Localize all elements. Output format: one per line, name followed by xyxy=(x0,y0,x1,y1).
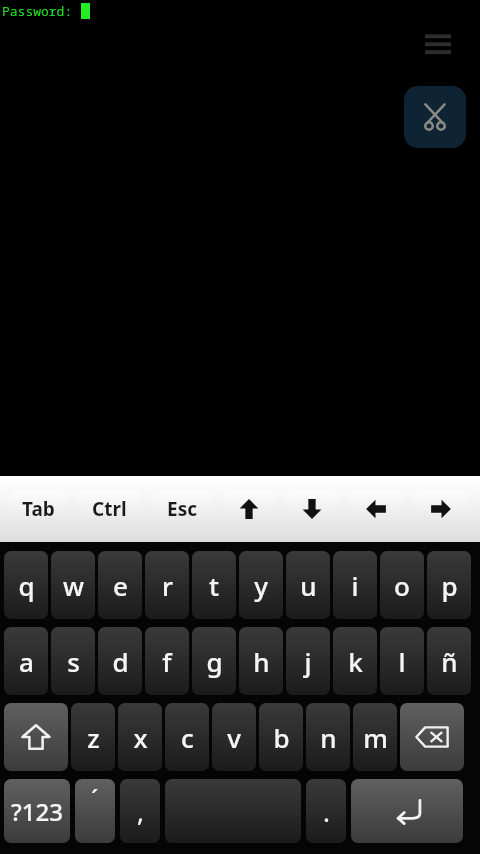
button[interactable]: Space xyxy=(165,779,301,843)
staticText: l xyxy=(398,644,406,679)
button[interactable]: n xyxy=(306,703,350,771)
staticText: g xyxy=(206,644,223,679)
button[interactable]: Cut xyxy=(404,86,466,148)
button[interactable]: a xyxy=(4,627,48,695)
staticText: q xyxy=(18,568,35,603)
button[interactable]: Arrow up xyxy=(222,490,276,528)
staticText: d xyxy=(112,644,129,679)
button[interactable]: Backspace xyxy=(400,703,464,771)
button[interactable]: f xyxy=(145,627,189,695)
staticText: Ctrl xyxy=(92,496,127,522)
button[interactable]: d xyxy=(98,627,142,695)
staticText: t xyxy=(209,568,219,603)
button[interactable]: , xyxy=(120,779,160,843)
staticText: ´ xyxy=(91,781,99,816)
button[interactable]: i xyxy=(333,551,377,619)
button[interactable]: v xyxy=(212,703,256,771)
button[interactable]: u xyxy=(286,551,330,619)
button[interactable]: o xyxy=(380,551,424,619)
staticText: Esc xyxy=(167,496,197,522)
button[interactable]: b xyxy=(259,703,303,771)
staticText: v xyxy=(227,720,241,755)
staticText: c xyxy=(181,720,194,755)
staticText: ñ xyxy=(441,644,458,679)
staticText: i xyxy=(351,568,359,603)
staticText: w xyxy=(63,568,84,603)
button[interactable]: k xyxy=(333,627,377,695)
button[interactable]: z xyxy=(71,703,115,771)
button[interactable]: t xyxy=(192,551,236,619)
button[interactable]: ñ xyxy=(427,627,471,695)
staticText: x xyxy=(133,720,148,755)
button[interactable]: Accent xyxy=(75,779,115,843)
staticText: a xyxy=(19,644,34,679)
staticText: ?123 xyxy=(11,795,63,828)
button[interactable]: x xyxy=(118,703,162,771)
button[interactable]: j xyxy=(286,627,330,695)
staticText: f xyxy=(162,644,172,679)
button[interactable]: Shift xyxy=(4,703,68,771)
staticText: h xyxy=(253,644,270,679)
staticText: . xyxy=(323,794,330,829)
staticText: u xyxy=(300,568,317,603)
button[interactable]: ?123 xyxy=(4,779,70,843)
button[interactable]: q xyxy=(4,551,48,619)
button[interactable]: c xyxy=(165,703,209,771)
button[interactable]: r xyxy=(145,551,189,619)
button[interactable]: Esc xyxy=(151,490,213,528)
staticText: k xyxy=(348,644,363,679)
staticText: n xyxy=(320,720,337,755)
button[interactable]: Tab xyxy=(9,490,67,528)
button[interactable]: Arrow down xyxy=(285,490,339,528)
button[interactable]: Enter xyxy=(351,779,463,843)
button[interactable]: l xyxy=(380,627,424,695)
button[interactable]: w xyxy=(51,551,95,619)
staticText: z xyxy=(87,720,100,755)
button[interactable]: e xyxy=(98,551,142,619)
button[interactable]: Menu xyxy=(422,28,454,60)
button[interactable]: p xyxy=(427,551,471,619)
button[interactable]: h xyxy=(239,627,283,695)
staticText: o xyxy=(394,568,410,603)
staticText: Password: xyxy=(2,2,81,20)
button[interactable]: Arrow left xyxy=(348,490,404,528)
button[interactable]: Arrow right xyxy=(413,490,469,528)
button[interactable]: s xyxy=(51,627,95,695)
staticText: s xyxy=(67,644,80,679)
button[interactable]: y xyxy=(239,551,283,619)
button[interactable]: Ctrl xyxy=(76,490,142,528)
button[interactable]: m xyxy=(353,703,397,771)
staticText: p xyxy=(441,568,458,603)
staticText: j xyxy=(304,644,312,679)
staticText: e xyxy=(113,568,128,603)
staticText: b xyxy=(273,720,290,755)
button[interactable]: g xyxy=(192,627,236,695)
button[interactable]: . xyxy=(306,779,346,843)
staticText: , xyxy=(137,794,144,829)
staticText: m xyxy=(363,720,388,755)
staticText: y xyxy=(254,568,268,603)
staticText: r xyxy=(162,568,173,603)
staticText: Tab xyxy=(22,496,55,522)
